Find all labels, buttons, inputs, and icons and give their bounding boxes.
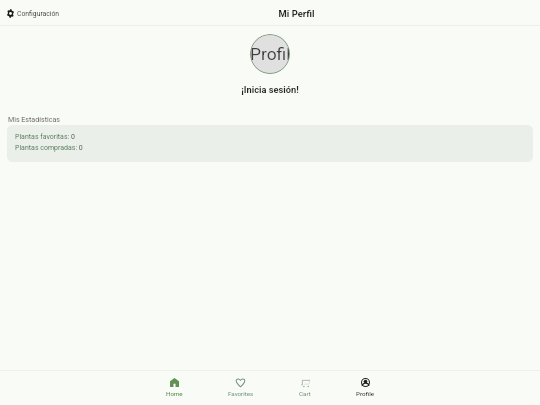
staticText: Plantas favoritas: 0 <box>15 133 75 141</box>
button[interactable]: Profile <box>250 34 290 74</box>
other: Configuración <box>7 9 14 18</box>
staticText: Home <box>166 390 183 397</box>
staticText: Profile <box>356 390 375 397</box>
button[interactable]: Configuración <box>7 9 60 18</box>
staticText: Plantas compradas: 0 <box>15 144 83 152</box>
other: Profile <box>361 378 370 387</box>
staticText: ¡Inicia sesión! <box>0 84 540 95</box>
other: Favorites <box>236 378 245 387</box>
other: Cart <box>301 378 310 387</box>
button[interactable]: Profile <box>334 370 397 405</box>
other: Home <box>170 378 179 387</box>
button[interactable]: Favorites <box>205 370 276 405</box>
staticText: Configuración <box>17 10 60 18</box>
staticText: Favorites <box>228 390 254 397</box>
button[interactable]: Cart <box>276 370 334 405</box>
button[interactable]: Home <box>144 370 205 405</box>
staticText: Mi Perfil <box>60 8 533 19</box>
staticText: Cart <box>299 390 311 397</box>
staticText: Mis Estadísticas <box>8 115 60 123</box>
staticText: Profile <box>250 44 290 64</box>
